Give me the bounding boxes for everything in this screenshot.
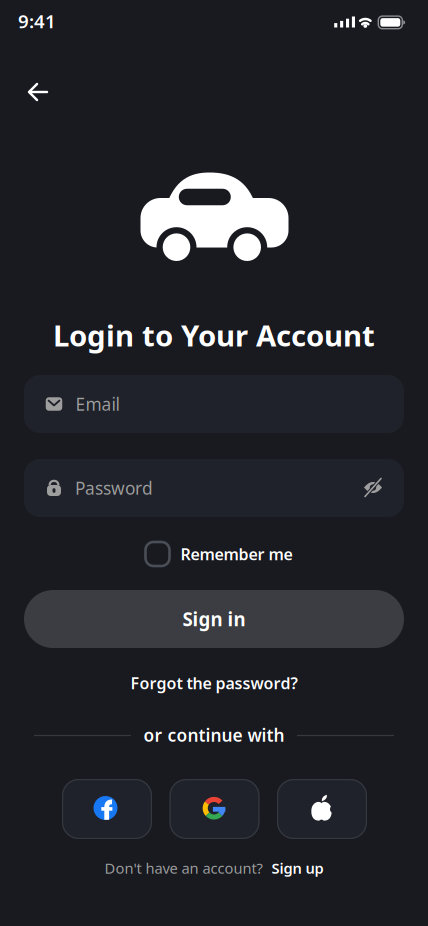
staticText: Sign up: [271, 858, 323, 878]
button[interactable]: Sign in: [24, 590, 404, 648]
button[interactable]: Email: [24, 375, 404, 433]
staticText: Sign in: [182, 607, 245, 631]
button[interactable]: Continue with Facebook: [62, 779, 152, 839]
staticText: Login to Your Account: [53, 315, 375, 354]
button[interactable]: Remember me: [145, 542, 292, 566]
staticText: Remember me: [180, 543, 292, 565]
button[interactable]: Forgot the password?: [130, 672, 297, 694]
button[interactable]: Back: [16, 70, 60, 114]
staticText: 9:41: [18, 9, 56, 33]
staticText: or continue with: [143, 723, 284, 746]
staticText: Email: [75, 392, 119, 415]
staticText: Forgot the password?: [130, 672, 297, 694]
staticText: Don't have an account?: [104, 858, 262, 878]
button[interactable]: Sign up: [271, 858, 323, 878]
button[interactable]: Continue with Apple: [277, 779, 367, 839]
button[interactable]: Show password: [355, 469, 391, 505]
button[interactable]: Password: [24, 459, 404, 517]
button[interactable]: Continue with Google: [169, 779, 259, 839]
staticText: Password: [75, 476, 153, 499]
